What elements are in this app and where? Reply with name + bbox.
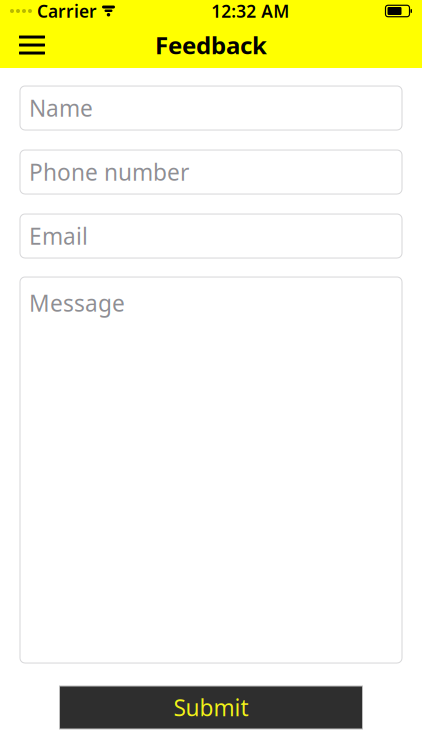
button[interactable]: Submit	[59, 686, 362, 729]
staticText: Email	[29, 221, 88, 251]
staticText: Name	[29, 93, 93, 123]
staticText: Phone number	[29, 157, 189, 187]
staticText: Submit	[173, 692, 248, 722]
staticText: Message	[29, 288, 125, 318]
staticText: Feedback	[155, 29, 267, 61]
staticText: 12:32 AM	[211, 0, 289, 22]
button[interactable]: Menu	[10, 23, 54, 67]
staticText: Carrier	[37, 0, 97, 22]
